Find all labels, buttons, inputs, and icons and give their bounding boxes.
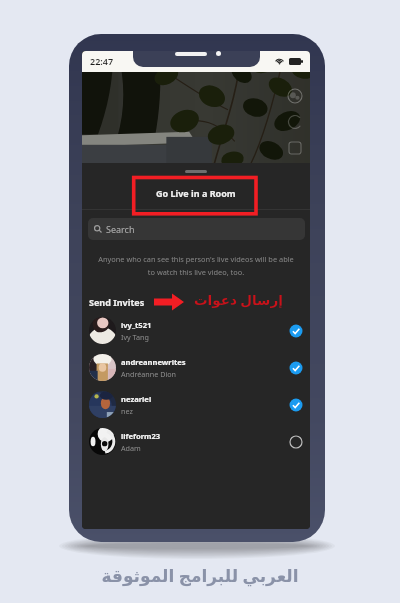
button[interactable]: Flip camera (287, 114, 303, 130)
staticText: nezariel (121, 394, 152, 404)
staticText: Send Invites (89, 296, 145, 308)
staticText: Ivy Tang (121, 332, 149, 342)
staticText: Andréanne Dion (121, 369, 177, 379)
staticText: إرسال دعوات (194, 291, 283, 309)
staticText: العربي للبرامج الموثوقة (0, 564, 400, 587)
button[interactable]: andreannewrites (89, 349, 303, 386)
staticText: Search (106, 223, 135, 235)
staticText: Adam (121, 443, 141, 453)
staticText: ivy_t521 (121, 320, 152, 330)
button[interactable]: nezariel (89, 386, 303, 423)
button[interactable]: ivy_t521 (89, 312, 303, 349)
button[interactable]: Go Live in a Room (82, 171, 310, 214)
staticText: Anyone who can see this person's live vi… (89, 254, 303, 277)
staticText: Go Live in a Room (156, 187, 236, 199)
button[interactable]: Capture (288, 141, 302, 155)
staticText: 22:47 (90, 55, 114, 67)
staticText: lifeform23 (121, 431, 161, 441)
staticText: nez (121, 406, 133, 416)
staticText: andreannewrites (121, 357, 186, 367)
button[interactable]: Effects (287, 88, 303, 104)
button[interactable]: Search (88, 218, 305, 240)
button[interactable]: lifeform23 (89, 423, 303, 460)
